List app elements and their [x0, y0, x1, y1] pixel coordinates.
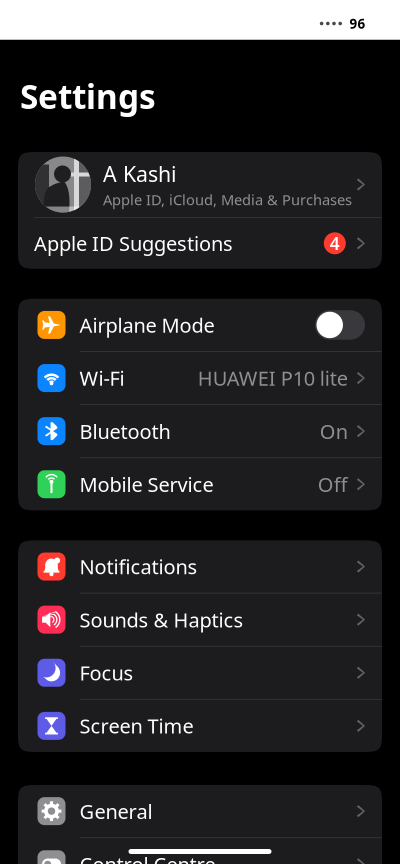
button[interactable]: A Kashi — [18, 152, 382, 217]
button[interactable]: Screen Time — [18, 700, 382, 752]
staticText: 4 — [330, 232, 340, 255]
staticText: Screen Time — [79, 713, 193, 739]
staticText: Apple ID, iCloud, Media & Purchases — [103, 190, 352, 209]
button[interactable]: Wi-Fi — [18, 352, 382, 404]
staticText: Mobile Service — [79, 471, 213, 498]
button[interactable]: Airplane Mode — [18, 299, 382, 351]
staticText: Bluetooth — [79, 418, 170, 444]
button[interactable]: Sounds & Haptics — [18, 593, 382, 646]
staticText: On — [320, 418, 348, 444]
button[interactable]: Apple ID Suggestions — [18, 218, 382, 269]
staticText: 96 — [349, 15, 365, 32]
button[interactable]: Focus — [18, 647, 382, 699]
staticText: Off — [318, 471, 348, 498]
staticText: Focus — [79, 659, 133, 686]
button[interactable]: Mobile Service — [18, 458, 382, 510]
staticText: Control Centre — [79, 851, 215, 864]
staticText: Settings — [20, 74, 156, 118]
button[interactable]: Control Centre — [18, 838, 382, 864]
staticText: Wi-Fi — [79, 365, 124, 391]
staticText: HUAWEI P10 lite — [198, 365, 348, 391]
staticText: Airplane Mode — [79, 312, 214, 338]
button[interactable]: General — [18, 785, 382, 837]
staticText: General — [79, 798, 152, 824]
staticText: A Kashi — [103, 160, 177, 188]
button[interactable]: Notifications — [18, 540, 382, 593]
staticText: 5:50 — [42, 12, 77, 35]
button[interactable]: Bluetooth — [18, 405, 382, 457]
staticText: Sounds & Haptics — [79, 606, 243, 633]
staticText: Notifications — [79, 553, 197, 580]
staticText: Apple ID Suggestions — [34, 230, 233, 257]
